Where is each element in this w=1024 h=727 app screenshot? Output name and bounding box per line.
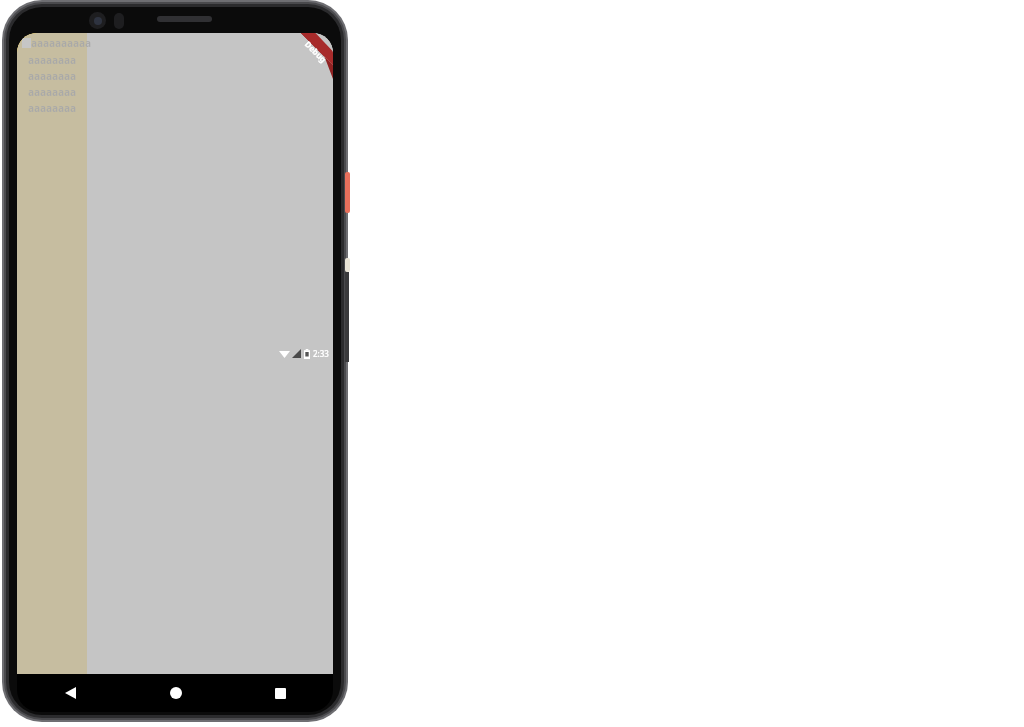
- staticText: Debug: [303, 38, 329, 65]
- staticText: aaaaaaaa: [28, 85, 76, 99]
- staticText: aaaaaaaaaa: [31, 36, 91, 50]
- button[interactable]: Power: [345, 172, 350, 213]
- staticText: 2:33: [313, 348, 329, 359]
- button[interactable]: Back: [17, 674, 123, 712]
- staticText: aaaaaaaa: [28, 53, 76, 67]
- staticText: aaaaaaaa: [28, 101, 76, 115]
- button[interactable]: Home: [123, 674, 228, 712]
- button[interactable]: Recent apps: [228, 674, 333, 712]
- staticText: aaaaaaaa: [28, 69, 76, 83]
